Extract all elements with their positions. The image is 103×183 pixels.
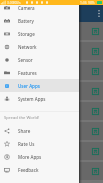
button[interactable]: Network	[0, 40, 79, 53]
button[interactable]: Battery	[0, 14, 79, 27]
staticText: Rate Us	[18, 141, 35, 147]
button[interactable]	[0, 142, 103, 162]
button[interactable]: Camera	[0, 1, 79, 14]
button[interactable]	[0, 42, 103, 62]
button[interactable]	[0, 122, 103, 142]
button[interactable]	[0, 22, 103, 42]
button[interactable]	[0, 82, 103, 102]
staticText: Sensor	[18, 57, 33, 63]
staticText: Battery	[18, 18, 34, 24]
button[interactable]	[0, 182, 103, 183]
button[interactable]: Feedback	[0, 163, 79, 176]
staticText: Share	[18, 128, 31, 134]
button[interactable]	[0, 162, 103, 182]
button[interactable]	[0, 102, 103, 122]
button[interactable]: Rate Us	[0, 137, 79, 150]
button[interactable]: User Apps	[0, 79, 79, 92]
button[interactable]: Sensor	[0, 53, 79, 66]
staticText: 1:36	[80, 0, 87, 4]
staticText: Network	[18, 44, 37, 50]
staticText: User Apps	[18, 83, 40, 89]
button[interactable]: System Apps	[0, 92, 79, 105]
button[interactable]: More Apps	[0, 150, 79, 163]
staticText: Feedback	[18, 167, 39, 173]
staticText: Features	[18, 70, 37, 76]
staticText: Spread the World!	[4, 115, 40, 121]
staticText: 98%	[88, 0, 95, 4]
button[interactable]: Features	[0, 66, 79, 79]
button[interactable]: Storage	[0, 27, 79, 40]
staticText: Camera	[18, 5, 35, 11]
staticText: Storage	[18, 31, 35, 37]
button[interactable]	[0, 62, 103, 82]
button[interactable]: Share	[0, 124, 79, 137]
staticText: System Apps	[18, 96, 46, 102]
button[interactable]: More options	[95, 5, 103, 22]
staticText: 3.00KB/s	[7, 0, 21, 4]
staticText: More Apps	[18, 154, 42, 160]
